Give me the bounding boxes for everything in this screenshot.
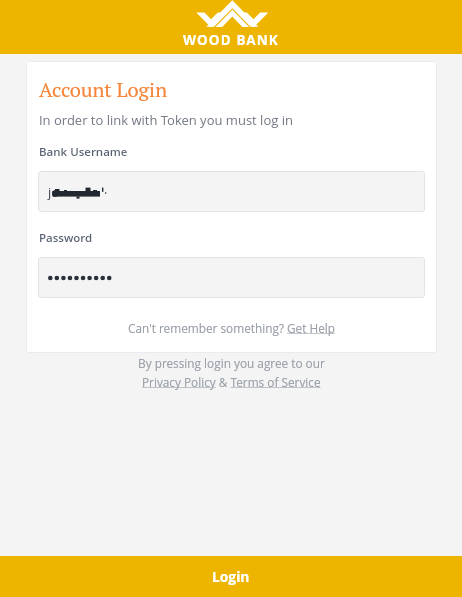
button[interactable]: Privacy Policy & Terms of Service (142, 374, 321, 390)
button[interactable]: Bank username field (38, 171, 425, 212)
button[interactable]: Password field (38, 257, 425, 298)
button[interactable]: Can't remember something? Get Help (128, 320, 335, 336)
staticText: By pressing login you agree to our (138, 355, 325, 371)
staticText: Login (212, 567, 250, 586)
staticText: jo (48, 183, 60, 201)
staticText: In order to link with Token you must log… (39, 111, 293, 129)
staticText: Bank Username (39, 144, 128, 160)
staticText: Account Login (39, 76, 168, 103)
other: Wood Bank logo (195, 0, 271, 29)
staticText: Password (39, 230, 93, 246)
button[interactable]: Login (0, 556, 462, 597)
staticText: WOOD BANK (183, 31, 279, 49)
